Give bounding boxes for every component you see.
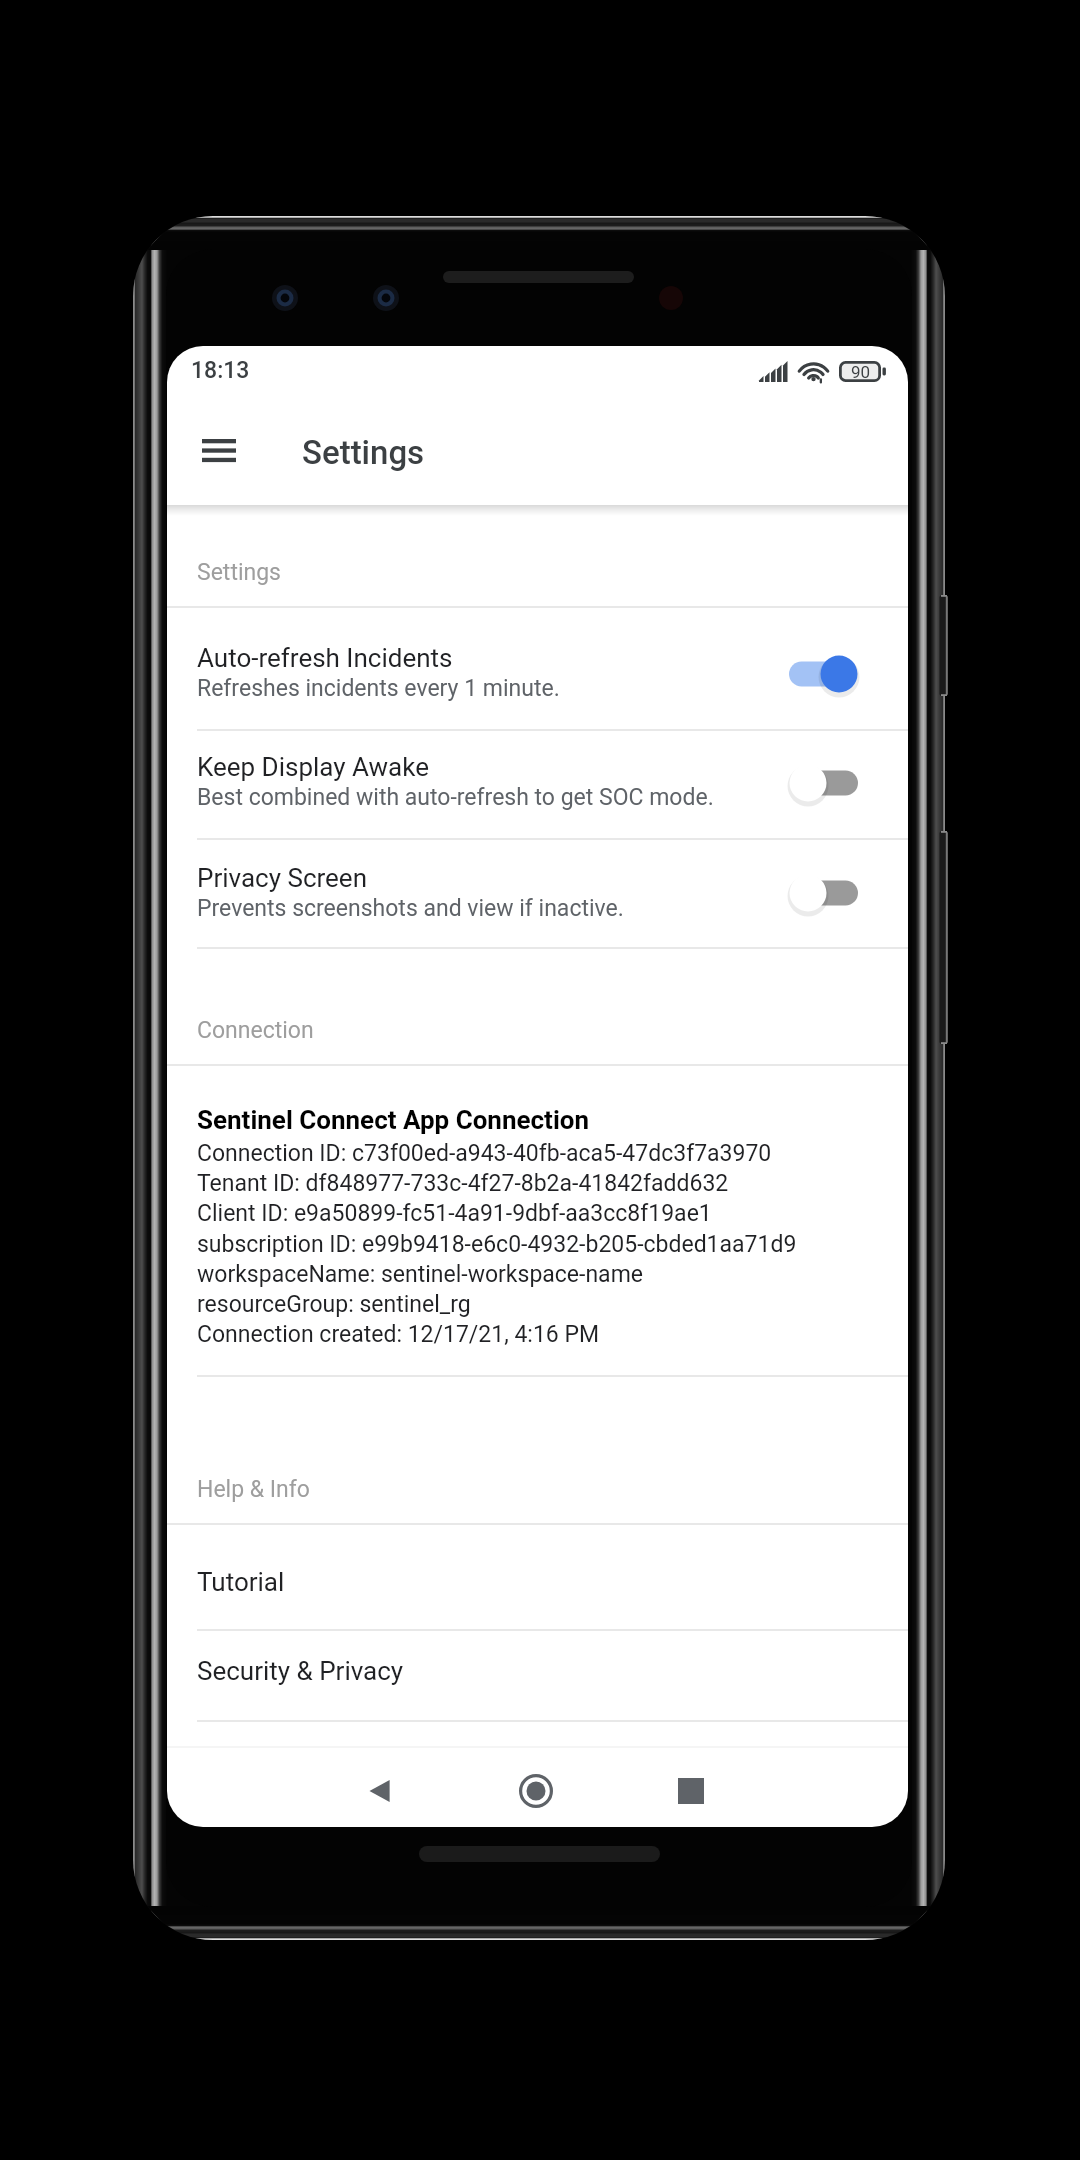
staticText: Sentinel Connect App Connection [197,1105,590,1135]
button[interactable]: Keep Display Awake [167,729,908,838]
button[interactable]: Auto-refresh Incidents [167,606,908,729]
button[interactable]: Open navigation drawer [177,408,261,492]
staticText: Connection ID: c73f00ed-a943-40fb-aca5-4… [197,1140,772,1167]
staticText: 90 [851,362,871,382]
staticText: workspaceName: sentinel-workspace-name [197,1261,643,1288]
button[interactable]: Home [499,1754,573,1827]
staticText: Tenant ID: df848977-733c-4f27-8b2a-41842… [197,1170,729,1197]
staticText: resourceGroup: sentinel_rg [197,1291,471,1318]
staticText: Connection [197,1017,314,1044]
staticText: Client ID: e9a50899-fc51-4a91-9dbf-aa3cc… [197,1200,712,1227]
button[interactable]: Tutorial [167,1523,908,1629]
staticText: 18:13 [191,357,250,384]
staticText: Connection created: 12/17/21, 4:16 PM [197,1321,600,1348]
button[interactable]: Back [343,1754,417,1827]
staticText: Settings [302,433,425,472]
staticText: Prevents screenshots and view if inactiv… [197,895,624,922]
staticText: subscription ID: e99b9418-e6c0-4932-b205… [197,1231,797,1258]
staticText: Keep Display Awake [197,752,429,782]
staticText: Help & Info [197,1476,310,1503]
staticText: Settings [197,559,281,586]
staticText: Tutorial [197,1567,285,1597]
button[interactable]: Security & Privacy [167,1629,908,1720]
button[interactable]: Privacy Screen [167,838,908,947]
staticText: Refreshes incidents every 1 minute. [197,675,560,702]
staticText: Privacy Screen [197,863,367,893]
button[interactable]: Sentinel Connect App Connection [167,1064,908,1375]
button[interactable]: Recent apps [654,1754,728,1827]
staticText: Security & Privacy [197,1656,404,1686]
staticText: Best combined with auto-refresh to get S… [197,784,714,811]
staticText: Auto-refresh Incidents [197,643,453,673]
